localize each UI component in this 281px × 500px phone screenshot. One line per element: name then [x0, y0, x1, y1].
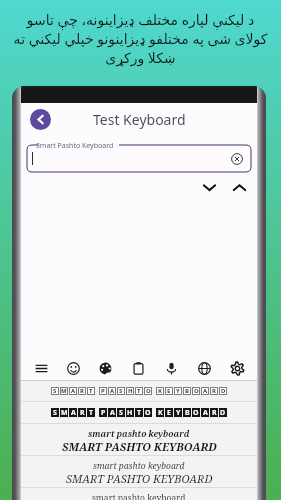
button[interactable]: smart pashto keyboard — [21, 456, 257, 487]
staticText: P — [101, 408, 106, 417]
button[interactable]: Settings — [226, 357, 248, 379]
staticText: E — [167, 387, 171, 395]
staticText: S — [53, 387, 57, 395]
button[interactable]: Clipboard — [127, 357, 149, 379]
staticText: T — [89, 387, 93, 395]
staticText: Smart Pashto Keyboard — [36, 141, 114, 151]
staticText: T — [137, 408, 142, 417]
staticText: Y — [176, 387, 180, 395]
staticText: O — [194, 387, 199, 395]
staticText: B — [185, 387, 189, 395]
button[interactable]: Emoji — [62, 357, 84, 379]
staticText: A — [71, 387, 76, 395]
staticText: R — [212, 387, 216, 395]
staticText: R — [80, 387, 84, 395]
staticText: O — [145, 408, 151, 417]
button[interactable]: Next — [201, 179, 217, 195]
staticText: A — [110, 387, 115, 395]
staticText: Test Keyboard — [93, 110, 186, 129]
staticText: R — [80, 408, 85, 417]
button[interactable]: Menu — [30, 357, 52, 379]
button[interactable]: S — [21, 381, 257, 401]
staticText: D — [220, 408, 226, 417]
staticText: O — [146, 387, 151, 395]
staticText: K — [158, 387, 162, 395]
staticText: H — [128, 387, 133, 395]
staticText: T — [89, 408, 94, 417]
staticText: K — [158, 408, 163, 417]
staticText: O — [193, 408, 199, 417]
staticText: A — [110, 408, 115, 417]
staticText: S — [119, 408, 123, 417]
staticText: A — [71, 408, 76, 417]
button[interactable]: Language — [193, 357, 215, 379]
staticText: SMART PASHTO KEYBOARD — [66, 471, 213, 486]
staticText: D — [221, 387, 226, 395]
button[interactable]: Back — [30, 109, 51, 130]
button[interactable]: Clear text — [229, 151, 245, 167]
button[interactable]: smart pashto keyboard — [21, 488, 257, 500]
button[interactable]: S — [21, 402, 257, 423]
staticText: A — [203, 408, 208, 417]
staticText: H — [127, 408, 133, 417]
staticText: E — [167, 408, 171, 417]
button[interactable]: Voice input — [160, 357, 182, 379]
staticText: M — [61, 408, 68, 417]
staticText: Y — [176, 408, 181, 417]
staticText: smart pashto keyboard — [88, 428, 190, 440]
staticText: P — [101, 387, 105, 395]
staticText: T — [137, 387, 141, 395]
button[interactable]: smart pashto keyboard — [21, 424, 257, 455]
staticText: smart pashto keyboard — [93, 460, 185, 472]
staticText: S — [119, 387, 123, 395]
staticText: SMART PASHTO KEYBOARD — [62, 439, 217, 454]
staticText: د لیکنې لپاره مختلف ډیزاینونه، چې تاسو ک… — [0, 10, 281, 67]
staticText: B — [185, 408, 190, 417]
staticText: A — [203, 387, 208, 395]
button[interactable]: Themes — [94, 357, 116, 379]
button[interactable]: Previous — [231, 179, 247, 195]
staticText: M — [61, 387, 67, 395]
staticText: R — [212, 408, 217, 417]
staticText: smart pashto keyboard — [92, 492, 186, 500]
staticText: S — [53, 408, 57, 417]
